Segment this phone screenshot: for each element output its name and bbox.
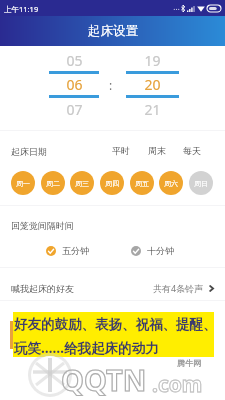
staticText: 20 — [144, 75, 161, 94]
staticText: 平时 — [112, 145, 130, 156]
staticText: 回笼觉间隔时间 — [11, 220, 74, 231]
staticText: 07 — [66, 100, 83, 119]
button[interactable]: 周日 — [189, 171, 213, 195]
staticText: : — [109, 77, 113, 93]
staticText: 05 — [66, 51, 83, 70]
staticText: 周日 — [194, 179, 208, 188]
staticText: 腾牛网 — [177, 358, 201, 368]
staticText: 19 — [144, 51, 161, 70]
staticText: 周四 — [105, 179, 119, 188]
button[interactable]: 周末 — [144, 141, 170, 159]
staticText: 周末 — [148, 145, 166, 156]
staticText: 共有4条铃声 — [153, 282, 204, 294]
staticText: 周三 — [75, 179, 89, 188]
staticText: 起床日期 — [11, 146, 47, 157]
button[interactable]: 周六 — [159, 171, 183, 195]
button[interactable]: 平时 — [108, 141, 134, 159]
staticText: 周六 — [164, 179, 178, 188]
button[interactable]: 十分钟 — [128, 242, 177, 259]
button[interactable]: 喊我起床的好友 — [0, 279, 225, 297]
button[interactable]: 周三 — [70, 171, 94, 195]
staticText: QQTN — [61, 360, 147, 399]
button[interactable]: 周四 — [100, 171, 124, 195]
staticText: 周二 — [46, 179, 60, 188]
staticText: 周五 — [135, 179, 149, 188]
staticText: .com — [152, 370, 203, 399]
button[interactable]: 周二 — [41, 171, 65, 195]
staticText: 起床设置 — [88, 23, 138, 39]
button[interactable]: 五分钟 — [43, 242, 92, 259]
staticText: 十分钟 — [147, 245, 174, 256]
staticText: 喊我起床的好友 — [11, 283, 74, 294]
staticText: 06 — [66, 75, 83, 94]
staticText: 每天 — [183, 145, 201, 156]
staticText: 周一 — [16, 179, 30, 188]
button[interactable]: 周一 — [11, 171, 35, 195]
staticText: 上午11:19 — [4, 4, 39, 14]
staticText: 好友的鼓励、表扬、祝福、提醒、 玩笑……给我起床的动力 — [14, 316, 218, 357]
staticText: 五分钟 — [62, 245, 89, 256]
staticText: 21 — [144, 100, 161, 119]
button[interactable]: 周五 — [130, 171, 154, 195]
button[interactable]: 每天 — [179, 141, 205, 159]
